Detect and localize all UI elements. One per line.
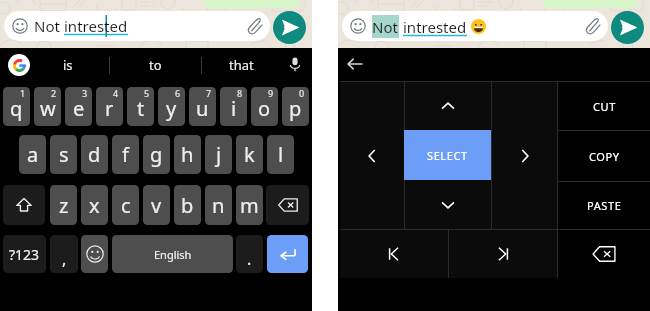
staticText: CUT (593, 99, 616, 114)
button[interactable]: s (50, 135, 77, 174)
button[interactable]: COPY (558, 131, 650, 181)
staticText: 3 (82, 87, 88, 99)
staticText: g (150, 141, 163, 168)
staticText: w (40, 95, 56, 122)
staticText: Not (372, 17, 398, 37)
staticText: that (229, 56, 254, 74)
button[interactable]: Send (273, 11, 306, 44)
staticText: y (166, 95, 177, 122)
staticText: ?123 (9, 245, 40, 264)
button[interactable]: CUT (558, 82, 650, 130)
button[interactable]: l (267, 135, 294, 174)
button[interactable]: Cursor left (340, 82, 403, 229)
staticText: o (258, 95, 271, 122)
button[interactable]: i (220, 87, 247, 126)
button[interactable]: Attach (245, 16, 266, 37)
staticText: s (59, 141, 69, 168)
staticText: r (105, 95, 114, 122)
button[interactable]: is (38, 48, 98, 82)
staticText: 8 (237, 87, 243, 99)
button[interactable]: , (50, 235, 78, 273)
button[interactable]: Attach (583, 16, 604, 37)
button[interactable]: z (50, 185, 77, 225)
staticText: i (231, 95, 237, 122)
staticText: z (59, 192, 69, 219)
staticText: f (122, 141, 129, 168)
button[interactable]: emoji (81, 235, 108, 273)
button[interactable]: p (282, 87, 309, 126)
button[interactable]: Not (342, 11, 608, 41)
button[interactable]: Move to start (340, 230, 448, 278)
button[interactable]: g (143, 135, 170, 174)
staticText: to (149, 56, 162, 74)
staticText: 6 (175, 87, 181, 99)
staticText: v (151, 192, 162, 219)
button[interactable]: x (81, 185, 108, 225)
button[interactable]: that (211, 48, 271, 82)
staticText: 5 (144, 87, 150, 99)
staticText: is (63, 56, 73, 74)
button[interactable]: . (236, 235, 263, 273)
other: bksp (277, 194, 299, 216)
staticText: 1 (20, 87, 26, 99)
staticText: intrested (64, 16, 128, 36)
button[interactable]: r (96, 87, 123, 126)
staticText: u (196, 95, 209, 122)
button[interactable]: shift (3, 185, 45, 225)
button[interactable]: Google (8, 54, 30, 76)
button[interactable]: m (236, 185, 263, 225)
button[interactable]: n (205, 185, 232, 225)
button[interactable]: Not (4, 11, 270, 41)
staticText: h (181, 141, 194, 168)
button[interactable]: q (3, 87, 30, 126)
button[interactable]: y (158, 87, 185, 126)
button[interactable]: Cursor down (405, 180, 491, 229)
button[interactable]: ?123 (3, 235, 46, 273)
button[interactable]: Backspace (558, 230, 650, 278)
staticText: 4 (113, 87, 119, 99)
button[interactable]: e (65, 87, 92, 126)
button[interactable]: h (174, 135, 201, 174)
button[interactable]: u (189, 87, 216, 126)
button[interactable]: v (143, 185, 170, 225)
button[interactable]: Back (344, 53, 366, 75)
button[interactable]: SELECT (404, 130, 491, 180)
staticText: k (244, 141, 255, 168)
button[interactable]: English (112, 235, 233, 273)
staticText: PASTE (587, 198, 622, 213)
button[interactable]: Move to end (449, 230, 557, 278)
button[interactable]: f (112, 135, 139, 174)
staticText: x (89, 192, 100, 219)
button[interactable]: k (236, 135, 263, 174)
staticText: 9 (268, 87, 274, 99)
button[interactable]: bksp (266, 185, 309, 225)
other: shift (14, 195, 34, 215)
button[interactable]: a (19, 135, 46, 174)
staticText: a (27, 141, 39, 168)
staticText: m (240, 192, 259, 219)
button[interactable]: PASTE (558, 182, 650, 229)
button[interactable]: Voice input (285, 54, 305, 74)
button[interactable]: w (34, 87, 61, 126)
staticText: . (247, 248, 252, 270)
button[interactable]: Send (611, 11, 644, 44)
button[interactable]: to (125, 48, 185, 82)
button[interactable]: Cursor up (405, 82, 491, 129)
other: enter (277, 243, 299, 265)
button[interactable]: t (127, 87, 154, 126)
button[interactable]: o (251, 87, 278, 126)
button[interactable]: j (205, 135, 232, 174)
staticText: t (137, 95, 145, 122)
button[interactable]: Cursor right (492, 82, 557, 229)
staticText: SELECT (427, 148, 468, 163)
staticText: 0 (299, 87, 305, 99)
button[interactable]: enter (267, 235, 308, 273)
button[interactable]: c (112, 185, 139, 225)
staticText: English (154, 247, 192, 262)
button[interactable]: b (174, 185, 201, 225)
staticText: n (212, 192, 225, 219)
staticText: e (73, 95, 85, 122)
staticText: intrested (403, 17, 467, 37)
button[interactable]: d (81, 135, 108, 174)
staticText: p (289, 95, 302, 122)
